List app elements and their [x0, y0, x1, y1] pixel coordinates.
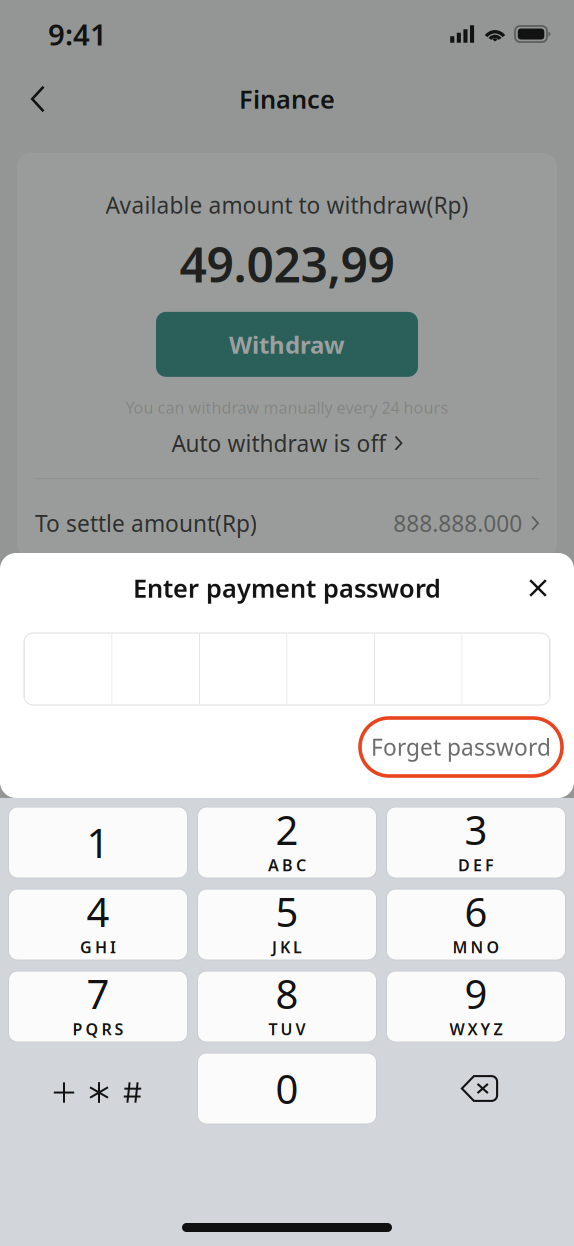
staticText: G H I	[80, 936, 116, 958]
button[interactable]: Back	[12, 73, 64, 125]
staticText: M N O	[452, 936, 499, 958]
staticText: 2	[275, 803, 298, 856]
button[interactable]: Symbols	[8, 1053, 187, 1124]
staticText: 6	[464, 885, 487, 938]
button[interactable]: 4	[8, 889, 187, 960]
staticText: Forget password	[371, 732, 551, 762]
staticText: Withdraw	[229, 328, 345, 360]
staticText: 1	[86, 816, 109, 869]
staticText: 0	[275, 1062, 298, 1115]
staticText: Enter payment password	[133, 571, 441, 605]
staticText: 4	[86, 885, 109, 938]
staticText: 3	[464, 803, 487, 856]
button[interactable]: Auto withdraw is off	[172, 424, 402, 462]
button[interactable]: 2	[197, 807, 376, 878]
staticText: A B C	[268, 854, 306, 876]
button[interactable]: Forget password	[360, 718, 562, 776]
staticText: Finance	[239, 82, 335, 116]
button[interactable]: To settle amount(Rp)	[17, 479, 557, 557]
staticText: You can withdraw manually every 24 hours	[125, 397, 448, 418]
button[interactable]: 0	[197, 1053, 376, 1124]
staticText: 888.888.000	[393, 508, 522, 538]
button[interactable]: 8	[197, 971, 376, 1042]
staticText: W X Y Z	[449, 1018, 502, 1040]
staticText: To settle amount(Rp)	[35, 508, 257, 538]
button[interactable]: 6	[386, 889, 565, 960]
staticText: Auto withdraw is off	[172, 428, 387, 458]
staticText: 8	[275, 967, 298, 1020]
button[interactable]: 3	[386, 807, 565, 878]
staticText: 9:41	[48, 14, 107, 53]
staticText: P Q R S	[72, 1018, 123, 1040]
button[interactable]: Withdraw	[156, 312, 418, 377]
button[interactable]: 9	[386, 971, 565, 1042]
staticText: 7	[86, 967, 109, 1020]
staticText: 49.023,99	[179, 232, 394, 296]
button[interactable]: Close	[514, 564, 562, 612]
staticText: T U V	[268, 1018, 305, 1040]
button[interactable]: 7	[8, 971, 187, 1042]
staticText: J K L	[272, 936, 302, 958]
button[interactable]: Delete	[386, 1053, 565, 1124]
staticText: D E F	[458, 854, 494, 876]
staticText: 9	[464, 967, 487, 1020]
button[interactable]: 1	[8, 807, 187, 878]
button[interactable]: 5	[197, 889, 376, 960]
staticText: Available amount to withdraw(Rp)	[105, 190, 468, 220]
staticText: 5	[275, 885, 298, 938]
